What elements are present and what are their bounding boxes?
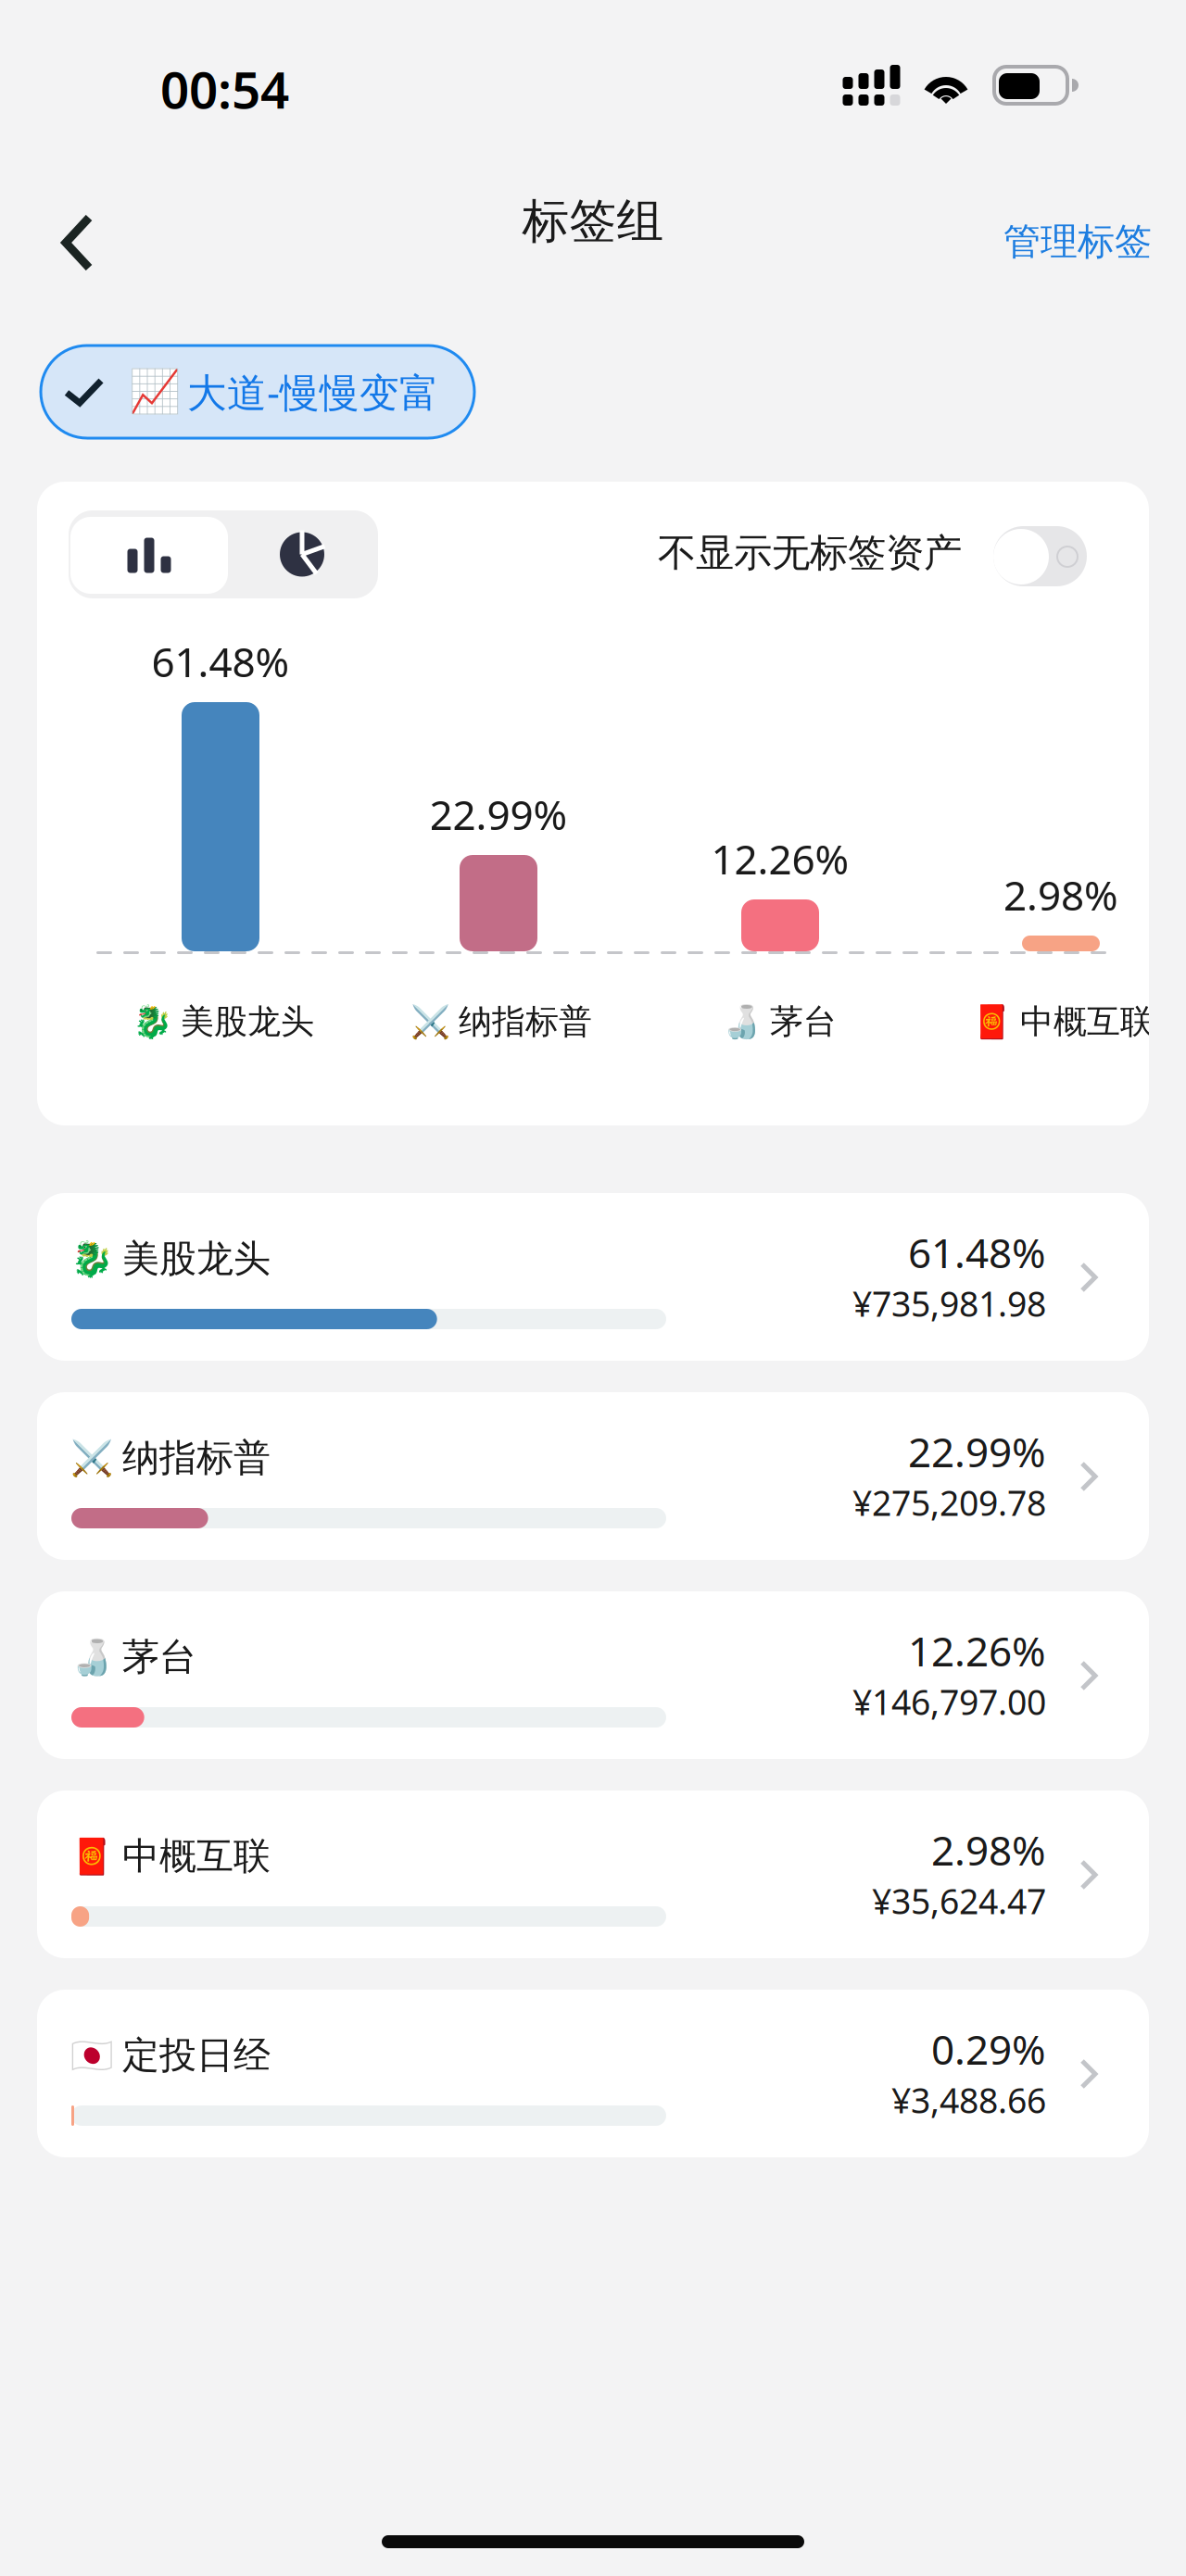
staticText: 🧧 [972,1003,1012,1040]
button[interactable]: 📈 [41,346,474,438]
staticText: 61.48% [151,634,290,688]
staticText: ¥35,624.47 [872,1878,1046,1924]
button[interactable]: 🐉 [37,1193,1149,1361]
button[interactable]: 🍶 [37,1591,1149,1759]
staticText: 🍶 [722,1003,762,1040]
button[interactable]: 柱状图 [70,517,228,594]
staticText: 00:54 [160,55,289,123]
staticText: 2.98% [1003,868,1118,922]
staticText: 美股龙头 [181,1001,314,1042]
button[interactable]: ⚔️ [37,1392,1149,1560]
staticText: 📈 [129,368,181,416]
staticText: 纳指标普 [122,1435,271,1481]
staticText: 美股龙头 [122,1236,271,1282]
staticText: ¥146,797.00 [852,1679,1046,1725]
staticText: 标签组 [522,193,664,250]
staticText: 中概互联 [1020,1001,1154,1042]
staticText: ⚔️ [70,1438,113,1478]
staticText: 🐉 [132,1003,172,1040]
button[interactable]: 🇯🇵 [37,1990,1149,2157]
staticText: 61.48% [908,1225,1046,1279]
staticText: 定投日经 [122,2033,271,2078]
staticText: 22.99% [429,787,568,841]
staticText: 🧧 [70,1837,113,1876]
staticText: 大道-慢慢变富 [187,366,439,418]
button[interactable]: 管理标签 [966,191,1152,293]
staticText: ¥3,488.66 [891,2077,1046,2123]
staticText: 管理标签 [1003,219,1152,264]
button[interactable]: 不显示无标签资产 [993,526,1087,586]
staticText: 🇯🇵 [70,2036,113,2075]
button[interactable]: 饼图 [226,516,378,593]
staticText: 茅台 [770,1001,837,1042]
button[interactable]: 返回 [61,180,163,282]
staticText: 0.29% [931,2022,1046,2076]
staticText: 🐉 [70,1239,113,1279]
staticText: 🍶 [70,1637,113,1677]
button[interactable]: 🧧 [37,1791,1149,1958]
staticText: 12.26% [711,832,849,886]
staticText: 不显示无标签资产 [658,529,962,577]
staticText: 22.99% [908,1424,1046,1479]
staticText: ¥735,981.98 [852,1280,1046,1326]
staticText: 2.98% [931,1823,1046,1877]
staticText: 12.26% [908,1624,1046,1678]
staticText: 中概互联 [122,1833,271,1879]
staticText: ⚔️ [410,1003,450,1040]
staticText: ¥275,209.78 [852,1479,1046,1525]
staticText: 纳指标普 [459,1001,592,1042]
staticText: 茅台 [122,1634,196,1680]
